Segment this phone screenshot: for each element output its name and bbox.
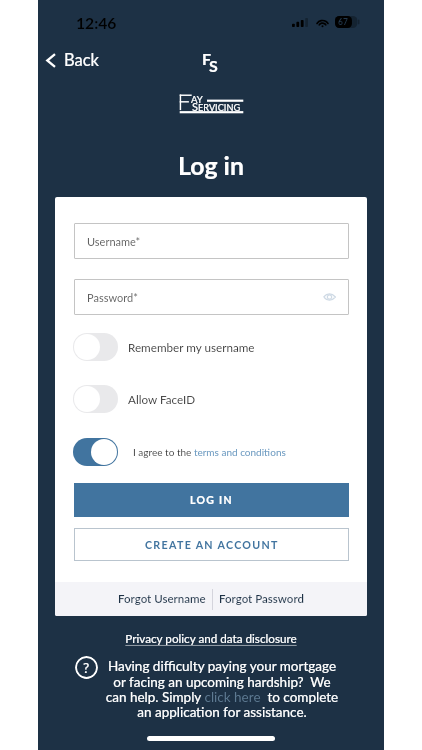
button[interactable]: I agree to the terms and conditions	[133, 446, 286, 458]
staticText: Remember my username	[128, 340, 255, 354]
staticText: ERVICING	[198, 102, 241, 113]
staticText: F	[202, 49, 212, 68]
staticText: S	[209, 56, 218, 75]
button[interactable]: Forgot Username	[112, 584, 212, 614]
button[interactable]	[73, 438, 118, 466]
button[interactable]: Password*	[74, 279, 349, 315]
button[interactable]: Forgot Password	[213, 584, 310, 614]
staticText: AY	[191, 94, 203, 106]
staticText: Username*	[87, 235, 141, 248]
staticText: Back	[64, 50, 99, 70]
button[interactable]: Username*	[74, 223, 349, 259]
button[interactable]: LOG IN	[74, 483, 349, 517]
staticText: Log in	[38, 151, 384, 181]
staticText: Having difficulty paying your mortgage o…	[104, 658, 340, 720]
staticText: ?	[83, 659, 90, 676]
button[interactable]	[73, 333, 118, 361]
staticText: S	[192, 100, 198, 113]
staticText: 12:46	[76, 14, 117, 33]
button[interactable]: Privacy policy and data disclosure	[38, 631, 384, 645]
staticText: 67	[338, 17, 348, 27]
staticText: Allow FaceID	[128, 392, 196, 406]
button[interactable]: Back	[40, 47, 109, 73]
other: Show password	[323, 293, 336, 301]
staticText: Password*	[87, 291, 138, 304]
button[interactable]: CREATE AN ACCOUNT	[74, 528, 349, 561]
button[interactable]	[73, 385, 118, 413]
staticText: CREATE AN ACCOUNT	[145, 538, 279, 551]
staticText: LOG IN	[190, 494, 233, 507]
button[interactable]: Help	[75, 656, 98, 679]
